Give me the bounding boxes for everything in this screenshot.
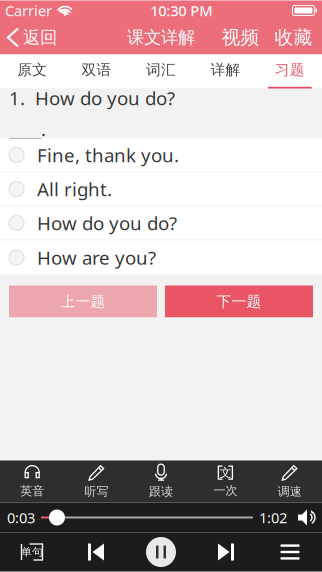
staticText: 返回 bbox=[23, 27, 57, 48]
staticText: 调速 bbox=[278, 484, 302, 499]
button[interactable]: How do you do? bbox=[0, 206, 322, 240]
button[interactable]: Playlist bbox=[258, 532, 322, 571]
button[interactable]: 视频 bbox=[214, 20, 267, 54]
button[interactable]: 文 bbox=[193, 460, 258, 502]
staticText: How are you? bbox=[37, 245, 156, 270]
button[interactable]: 下一题 bbox=[165, 285, 313, 317]
staticText: 课文详解 bbox=[127, 27, 195, 48]
staticText: How do you do? bbox=[37, 211, 177, 235]
button[interactable]: 调速 bbox=[258, 460, 322, 502]
staticText: 跟读 bbox=[149, 484, 173, 499]
staticText: 下一题 bbox=[216, 292, 261, 310]
button[interactable]: 原文 bbox=[0, 54, 64, 88]
staticText: 1:02 bbox=[259, 508, 287, 527]
button[interactable]: 听写 bbox=[64, 460, 129, 502]
button[interactable]: All right. bbox=[0, 172, 322, 206]
staticText: 听写 bbox=[85, 484, 109, 499]
button[interactable]: 英音 bbox=[0, 460, 64, 502]
button[interactable]: Fine, thank you. bbox=[0, 138, 322, 172]
staticText: Carrier bbox=[5, 1, 52, 20]
staticText: 10:30 PM bbox=[150, 1, 212, 20]
button[interactable]: 跟读 bbox=[129, 460, 193, 502]
staticText: 0:03 bbox=[7, 508, 35, 527]
button[interactable]: 上一题 bbox=[9, 285, 157, 317]
staticText: 文 bbox=[219, 465, 231, 480]
button[interactable]: 返回 bbox=[0, 20, 65, 54]
button[interactable]: Previous bbox=[64, 532, 128, 571]
staticText: 视频 bbox=[221, 26, 259, 49]
staticText: ____. bbox=[9, 116, 46, 141]
staticText: 原文 bbox=[17, 61, 47, 79]
staticText: All right. bbox=[37, 177, 112, 201]
button[interactable]: Pause bbox=[128, 532, 194, 571]
button[interactable]: Volume bbox=[287, 508, 317, 526]
staticText: 收藏 bbox=[274, 26, 312, 49]
button[interactable]: Next bbox=[194, 532, 258, 571]
staticText: 上一题 bbox=[60, 292, 105, 310]
staticText: 习题 bbox=[275, 61, 305, 79]
staticText: 英音 bbox=[20, 484, 44, 498]
staticText: 详解 bbox=[210, 61, 240, 79]
button[interactable]: 详解 bbox=[193, 54, 258, 88]
button[interactable]: 双语 bbox=[64, 54, 129, 88]
button[interactable]: 习题 bbox=[258, 54, 322, 88]
button[interactable]: 收藏 bbox=[267, 20, 320, 54]
staticText: 1. How do you do? bbox=[9, 86, 175, 110]
staticText: 一次 bbox=[213, 483, 237, 498]
staticText: 单句 bbox=[21, 545, 43, 558]
staticText: 词汇 bbox=[146, 61, 176, 79]
staticText: Fine, thank you. bbox=[37, 143, 179, 167]
button[interactable]: Loop mode bbox=[0, 532, 64, 571]
button[interactable]: 词汇 bbox=[129, 54, 193, 88]
button[interactable]: How are you? bbox=[0, 240, 322, 274]
staticText: 双语 bbox=[82, 61, 112, 79]
